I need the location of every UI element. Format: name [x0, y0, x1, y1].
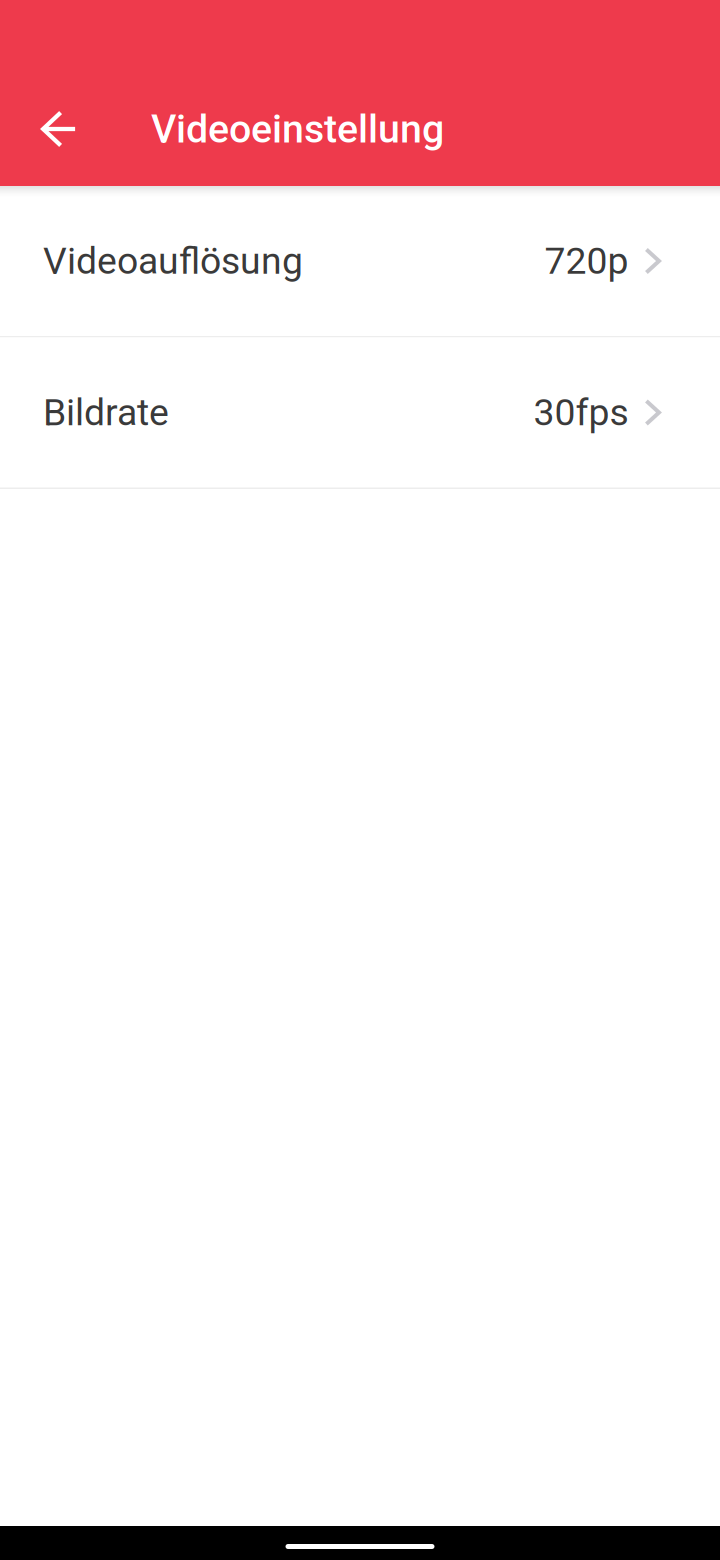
button[interactable]: Bildrate [0, 337, 720, 489]
button[interactable]: Back [24, 94, 94, 164]
staticText: Videoauflösung [43, 239, 303, 283]
staticText: 30fps [533, 391, 628, 434]
staticText: Videoeinstellung [151, 106, 444, 152]
staticText: 720p [544, 239, 628, 283]
button[interactable]: Videoauflösung [0, 186, 720, 337]
staticText: Bildrate [43, 391, 169, 434]
